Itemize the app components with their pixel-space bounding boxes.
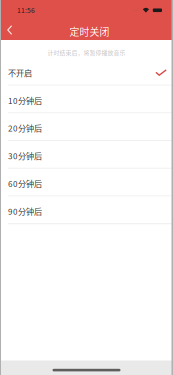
button[interactable]: 30分钟后 <box>0 141 173 169</box>
staticText: 60分钟后 <box>8 178 42 189</box>
staticText: 计时结束后，将暂停播放音乐 <box>47 48 125 57</box>
button[interactable]: 不开启 <box>0 58 173 86</box>
staticText: 20分钟后 <box>8 122 42 134</box>
button[interactable]: 10分钟后 <box>0 86 173 113</box>
staticText: 10分钟后 <box>8 94 42 106</box>
staticText: 90分钟后 <box>8 205 42 217</box>
staticText: 定时关闭 <box>69 24 109 39</box>
staticText: 30分钟后 <box>8 150 42 162</box>
button[interactable]: Back <box>0 20 20 40</box>
button[interactable]: 90分钟后 <box>0 196 173 224</box>
staticText: 11:56 <box>17 5 35 15</box>
staticText: 不开启 <box>8 67 32 79</box>
button[interactable]: 60分钟后 <box>0 169 173 196</box>
button[interactable]: 20分钟后 <box>0 113 173 141</box>
